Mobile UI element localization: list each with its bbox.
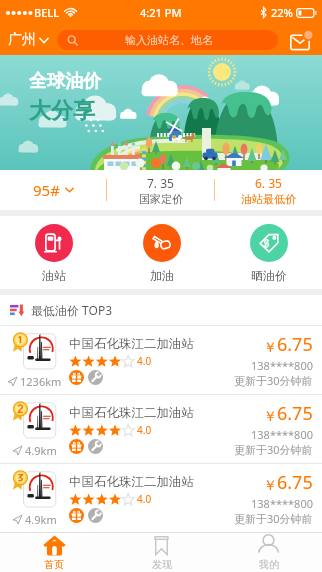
staticText: ￥ [263, 408, 277, 426]
staticText: ￥ [263, 477, 277, 495]
staticText: 最低油价 TOP3 [31, 302, 113, 318]
staticText: 广州 [8, 31, 36, 49]
staticText: 7. 35 [147, 175, 174, 191]
staticText: 油站 [42, 268, 66, 283]
staticText: 95# [33, 180, 60, 200]
button[interactable]: 我的 [215, 533, 322, 572]
staticText: 4.0 [137, 492, 152, 506]
staticText: 138****800 [251, 496, 313, 511]
staticText: 首页 [44, 558, 64, 571]
button[interactable]: 加油 [108, 216, 215, 289]
staticText: 4.0 [137, 354, 152, 368]
staticText: 中国石化珠江二加油站 [69, 336, 194, 352]
staticText: 晒油价 [251, 268, 287, 283]
staticText: 6.75 [277, 401, 313, 426]
staticText: 中国石化珠江二加油站 [69, 474, 194, 490]
staticText: 油站最低价 [241, 192, 296, 206]
staticText: 4.0 [137, 423, 152, 437]
button[interactable]: 首页 [0, 533, 108, 572]
button[interactable]: 1236km [0, 325, 322, 394]
button[interactable]: 全球油价 [0, 55, 322, 170]
staticText: 大分享 [29, 97, 95, 125]
staticText: 22% [271, 5, 293, 20]
staticText: 6.75 [277, 470, 313, 495]
staticText: 1236km [20, 374, 62, 389]
staticText: 4.9km [25, 443, 57, 458]
button[interactable]: 输入油站名、地名 [57, 30, 278, 50]
button[interactable]: 广州 [8, 31, 49, 49]
staticText: 加油 [150, 268, 174, 283]
staticText: 6.75 [277, 332, 313, 357]
staticText: 4.9km [25, 512, 57, 527]
staticText: 更新于30分钟前 [234, 373, 313, 388]
staticText: 更新于30分钟前 [234, 442, 313, 457]
staticText: 138****800 [251, 427, 313, 442]
button[interactable]: 6. 35 [215, 170, 322, 210]
staticText: 更新于30分钟前 [234, 511, 313, 526]
staticText: ￥ [263, 339, 277, 357]
staticText: BELL [34, 5, 60, 20]
button[interactable]: 7. 35 [107, 170, 214, 210]
button[interactable]: 晒油价 [215, 216, 322, 289]
button[interactable]: 油站 [0, 216, 108, 289]
staticText: 4:21 PM [140, 5, 182, 20]
button[interactable]: 发现 [108, 533, 215, 572]
staticText: 我的 [259, 558, 279, 571]
staticText: 输入油站名、地名 [78, 33, 260, 47]
staticText: 6. 35 [255, 175, 282, 191]
button[interactable]: 4.9km [0, 463, 322, 532]
button[interactable]: 4.9km [0, 394, 322, 463]
staticText: 138****800 [251, 358, 313, 373]
staticText: 国家定价 [139, 192, 183, 206]
staticText: 全球油价 [29, 70, 101, 93]
button[interactable]: 95# [0, 170, 106, 210]
staticText: 发现 [152, 558, 172, 571]
staticText: 中国石化珠江二加油站 [69, 405, 194, 421]
button[interactable]: Messages [288, 27, 314, 53]
